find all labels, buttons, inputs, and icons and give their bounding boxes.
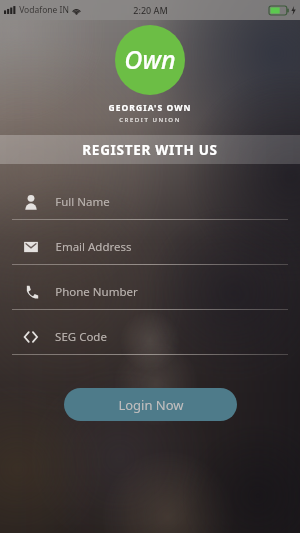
staticText: CREDIT UNION — [119, 116, 181, 124]
button[interactable]: Full Name — [0, 185, 300, 230]
staticText: Login Now — [118, 396, 184, 414]
button[interactable]: Phone Number — [0, 275, 300, 320]
staticText: GEORGIA'S OWN — [108, 102, 192, 114]
button[interactable]: Email Address — [0, 230, 300, 275]
staticText: 2:20 AM — [133, 4, 168, 16]
staticText: Vodafone IN — [19, 4, 69, 16]
staticText: Email Address — [55, 239, 132, 255]
button[interactable]: SEG Code — [0, 320, 300, 365]
staticText: REGISTER WITH US — [82, 141, 218, 159]
staticText: SEG Code — [55, 329, 107, 345]
staticText: Full Name — [55, 194, 110, 210]
staticText: Phone Number — [55, 284, 138, 300]
staticText: Own — [124, 42, 176, 76]
button[interactable]: Login Now — [64, 388, 237, 421]
